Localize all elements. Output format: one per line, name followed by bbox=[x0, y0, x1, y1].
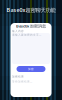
staticText: 请输入要加密的文字… bbox=[12, 33, 41, 36]
staticText: 加密 bbox=[28, 67, 34, 71]
staticText: Base0x 加密消息 bbox=[16, 23, 46, 29]
button[interactable]: 加密 bbox=[16, 66, 45, 72]
staticText: 加密结果 bbox=[12, 75, 24, 78]
staticText: 输入内容 bbox=[12, 29, 24, 33]
staticText: Base0x超密聊天功能 bbox=[6, 6, 55, 13]
staticText: 等待加密结果… bbox=[12, 80, 32, 83]
